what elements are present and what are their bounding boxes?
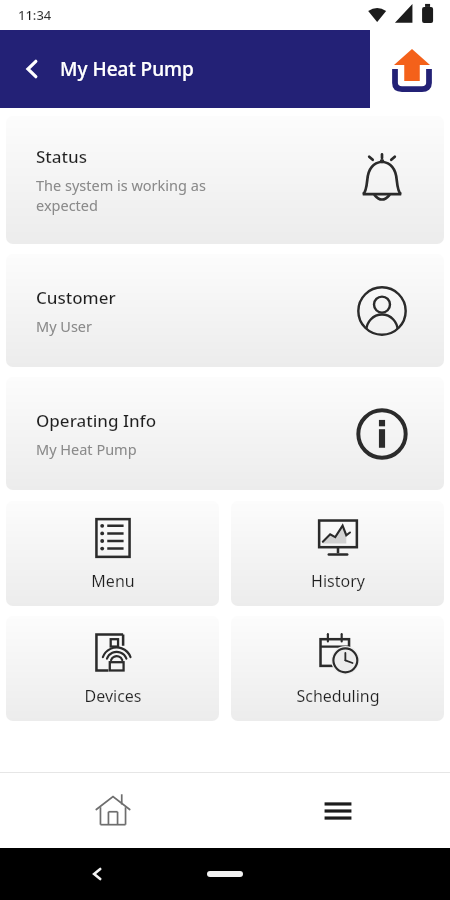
button[interactable]: Home [0,773,225,848]
staticText: My Heat Pump [60,56,194,82]
button[interactable]: Scheduling [231,616,444,721]
button[interactable]: Back [10,47,54,91]
staticText: Status [36,145,88,168]
button[interactable]: Menu [6,501,219,606]
button[interactable]: Customer [6,254,444,367]
staticText: Customer [36,286,116,309]
button[interactable]: App logo [384,41,440,97]
button[interactable]: History [231,501,444,606]
staticText: History [311,570,365,592]
staticText: The system is working as expected [36,175,206,216]
button[interactable]: Menu [225,773,450,848]
staticText: 11:34 [18,6,52,24]
button[interactable]: Devices [6,616,219,721]
staticText: My User [36,316,93,336]
staticText: Scheduling [296,685,380,707]
button[interactable]: Back [0,30,370,108]
staticText: My Heat Pump [36,439,137,459]
staticText: Devices [84,685,142,707]
staticText: Menu [91,570,135,592]
staticText: Operating Info [36,409,157,432]
button[interactable]: Operating Info [6,377,444,490]
button[interactable]: Status [6,116,444,244]
